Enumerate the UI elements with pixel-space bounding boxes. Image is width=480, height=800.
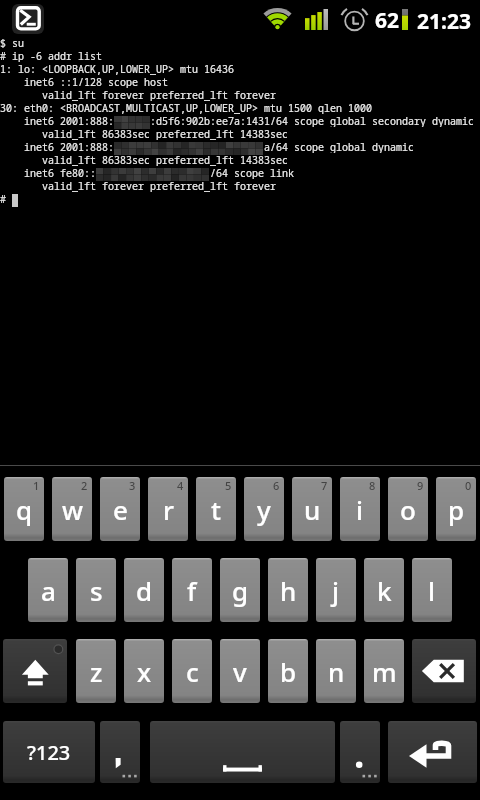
staticText: s — [90, 573, 103, 608]
staticText: b — [280, 654, 297, 689]
button[interactable]: ?123 — [3, 721, 95, 783]
staticText: 7 — [321, 478, 328, 493]
staticText: u — [304, 492, 321, 527]
staticText: g — [232, 573, 249, 608]
staticText: inet6 2001:888: a/64 scope global dynami… — [0, 140, 414, 153]
button[interactable]: w — [52, 477, 92, 541]
staticText: x — [137, 654, 152, 689]
staticText: 21:23 — [417, 7, 471, 36]
staticText: valid_lft forever preferred_lft forever — [0, 88, 276, 101]
staticText: m — [372, 654, 397, 689]
staticText: j — [332, 573, 340, 608]
staticText: 6 — [273, 478, 280, 493]
button[interactable]: v — [220, 639, 260, 703]
staticText: v — [233, 654, 247, 689]
button[interactable]: y — [244, 477, 284, 541]
staticText: h — [280, 573, 297, 608]
button[interactable]: e — [100, 477, 140, 541]
button[interactable]: d — [124, 558, 164, 622]
button[interactable]: o — [388, 477, 428, 541]
button[interactable]: k — [364, 558, 404, 622]
staticText: d — [136, 573, 153, 608]
staticText: 62 — [375, 6, 400, 35]
staticText: inet6 fe80:: /64 scope link — [0, 166, 294, 179]
button[interactable]: space — [150, 721, 335, 783]
button[interactable]: t — [196, 477, 236, 541]
staticText: 1: lo: <LOOPBACK,UP,LOWER_UP> mtu 16436 — [0, 62, 234, 75]
button[interactable]: g — [220, 558, 260, 622]
button[interactable]: h — [268, 558, 308, 622]
staticText: a — [41, 573, 56, 608]
staticText: inet6 2001:888: :d5f6:902b:ee7a:1431/64 … — [0, 114, 474, 127]
button[interactable]: b — [268, 639, 308, 703]
staticText: ?123 — [27, 739, 71, 766]
staticText: c — [186, 654, 199, 689]
staticText: 4 — [177, 478, 184, 493]
button[interactable]: s — [76, 558, 116, 622]
staticText: 5 — [225, 478, 232, 493]
button[interactable]: n — [316, 639, 356, 703]
button[interactable]: c — [172, 639, 212, 703]
staticText: n — [328, 654, 345, 689]
button[interactable]: u — [292, 477, 332, 541]
button[interactable]: a — [28, 558, 68, 622]
staticText: y — [257, 492, 271, 527]
staticText: o — [400, 492, 416, 527]
button[interactable]: shift — [3, 639, 67, 703]
staticText: l — [428, 573, 436, 608]
staticText: k — [377, 573, 392, 608]
staticText: 8 — [369, 478, 376, 493]
button[interactable]: z — [76, 639, 116, 703]
button[interactable]: enter — [388, 721, 477, 783]
staticText: f — [187, 573, 197, 608]
button[interactable]: p — [436, 477, 476, 541]
staticText: 0 — [465, 478, 472, 493]
staticText: valid_lft forever preferred_lft forever — [0, 179, 276, 192]
button[interactable]: m — [364, 639, 404, 703]
button[interactable]: q — [4, 477, 44, 541]
staticText: # — [0, 192, 12, 205]
staticText: 1 — [33, 478, 40, 493]
button[interactable]: period — [340, 721, 380, 783]
button[interactable]: l — [412, 558, 452, 622]
staticText: r — [163, 492, 174, 527]
staticText: valid_lft 86383sec preferred_lft 14383se… — [0, 127, 288, 140]
staticText: 9 — [417, 478, 424, 493]
staticText: inet6 ::1/128 scope host — [0, 75, 168, 88]
button[interactable]: comma — [100, 721, 140, 783]
staticText: $ su — [0, 36, 24, 49]
button[interactable]: i — [340, 477, 380, 541]
staticText: p — [448, 492, 465, 527]
button[interactable]: j — [316, 558, 356, 622]
staticText: w — [62, 492, 83, 527]
button[interactable]: x — [124, 639, 164, 703]
staticText: i — [356, 492, 364, 527]
staticText: 2 — [81, 478, 88, 493]
staticText: e — [113, 492, 128, 527]
staticText: z — [90, 654, 103, 689]
button[interactable]: r — [148, 477, 188, 541]
staticText: q — [16, 492, 33, 527]
staticText: 30: eth0: <BROADCAST,MULTICAST,UP,LOWER_… — [0, 101, 372, 114]
staticText: 3 — [129, 478, 136, 493]
staticText: t — [211, 492, 221, 527]
button[interactable]: f — [172, 558, 212, 622]
button[interactable]: del — [412, 639, 476, 703]
staticText: valid_lft 86383sec preferred_lft 14383se… — [0, 153, 288, 166]
staticText: # ip -6 addr list — [0, 49, 102, 62]
